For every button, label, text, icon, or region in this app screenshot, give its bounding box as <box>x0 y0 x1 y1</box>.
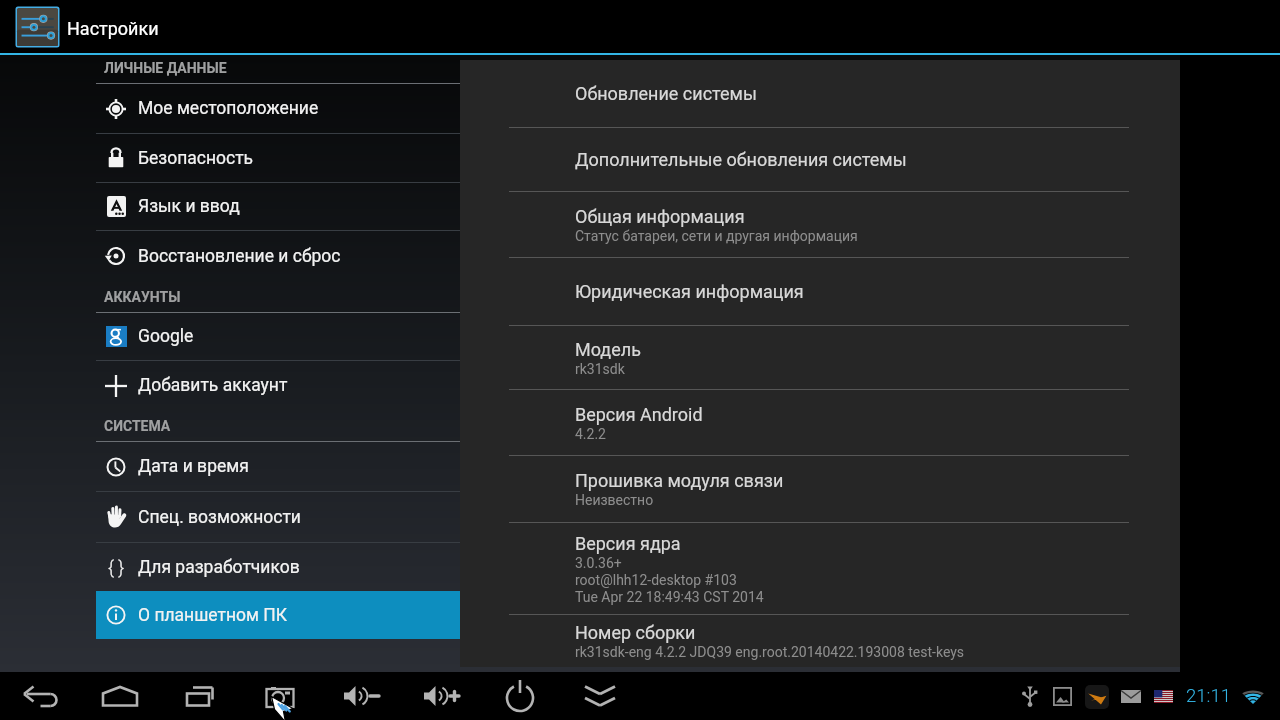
staticText: Номер сборки <box>575 622 696 643</box>
button[interactable]: Снимок экрана <box>240 672 320 720</box>
staticText: Неизвестно <box>575 492 654 508</box>
staticText: Добавить аккаунт <box>138 375 288 396</box>
staticText: Восстановление и сброс <box>138 246 341 267</box>
button[interactable]: 21:11 <box>1184 685 1233 707</box>
staticText: Статус батареи, сети и другая информация <box>575 228 858 244</box>
button[interactable]: Добавить аккаунт <box>96 361 460 410</box>
staticText: Tue Apr 22 18:49:43 CST 2014 <box>575 589 764 605</box>
staticText: Для разработчиков <box>138 557 300 578</box>
button[interactable]: USB <box>1014 681 1045 712</box>
button[interactable]: Версия Android <box>460 390 1180 455</box>
staticText: Дополнительные обновления системы <box>575 149 907 170</box>
staticText: Дата и время <box>138 456 249 477</box>
button[interactable]: Приложение <box>1079 679 1114 714</box>
button[interactable]: Версия ядра <box>460 523 1180 614</box>
staticText: Безопасность <box>138 148 254 169</box>
button[interactable]: Прошивка модуля связи <box>460 456 1180 522</box>
button[interactable]: Обновление системы <box>460 60 1180 127</box>
staticText: Настройки <box>67 18 159 39</box>
button[interactable]: Безопасность <box>96 134 460 182</box>
staticText: Язык и ввод <box>138 196 240 217</box>
staticText: root@lhh12-desktop #103 <box>575 572 737 588</box>
staticText: Прошивка модуля связи <box>575 470 784 491</box>
button[interactable]: Юридическая информация <box>460 258 1180 325</box>
staticText: Мое местоположение <box>138 98 319 119</box>
staticText: О планшетном ПК <box>138 605 288 626</box>
button[interactable]: О планшетном ПК <box>96 591 460 639</box>
button[interactable]: Почта <box>1114 679 1148 713</box>
staticText: Google <box>138 326 194 347</box>
button[interactable]: Спец. возможности <box>96 492 460 542</box>
button[interactable]: Недавние <box>160 672 240 720</box>
button[interactable]: Модель <box>460 326 1180 389</box>
button[interactable]: Громче <box>400 672 480 720</box>
staticText: 4.2.2 <box>575 426 606 442</box>
button[interactable]: Восстановление и сброс <box>96 231 460 281</box>
button[interactable]: Язык и ввод <box>96 183 460 230</box>
staticText: rk31sdk-eng 4.2.2 JDQ39 eng.root.2014042… <box>575 644 965 660</box>
staticText: { } <box>108 557 125 578</box>
staticText: 3.0.36+ <box>575 555 622 571</box>
button[interactable]: Общая информация <box>460 192 1180 257</box>
staticText: Обновление системы <box>575 83 757 104</box>
staticText: СИСТЕМА <box>104 418 171 434</box>
button[interactable]: Питание <box>480 672 560 720</box>
button[interactable]: Дата и время <box>96 442 460 491</box>
other: Настройки <box>15 5 60 49</box>
button[interactable]: Назад <box>0 672 80 720</box>
button[interactable]: Скриншот сохранён <box>1045 679 1079 713</box>
button[interactable]: { } <box>96 543 460 591</box>
staticText: Спец. возможности <box>138 507 301 528</box>
button[interactable]: Тише <box>320 672 400 720</box>
staticText: rk31sdk <box>575 361 625 377</box>
staticText: Модель <box>575 339 641 360</box>
button[interactable]: Wi-Fi <box>1238 681 1268 711</box>
staticText: ЛИЧНЫЕ ДАННЫЕ <box>104 60 227 76</box>
button[interactable]: Настройки <box>15 0 173 53</box>
button[interactable]: Скрыть <box>560 672 640 720</box>
staticText: Юридическая информация <box>575 281 804 302</box>
button[interactable]: Раскладка клавиатуры <box>1148 681 1178 711</box>
staticText: 21:11 <box>1186 685 1231 707</box>
staticText: Общая информация <box>575 206 745 227</box>
staticText: Версия ядра <box>575 533 681 554</box>
button[interactable]: Дополнительные обновления системы <box>460 128 1180 191</box>
button[interactable]: Номер сборки <box>460 615 1180 667</box>
button[interactable]: Google <box>96 313 460 360</box>
staticText: АККАУНТЫ <box>104 289 181 305</box>
button[interactable]: Мое местоположение <box>96 84 460 133</box>
button[interactable]: Главный экран <box>80 672 160 720</box>
staticText: Версия Android <box>575 404 703 425</box>
